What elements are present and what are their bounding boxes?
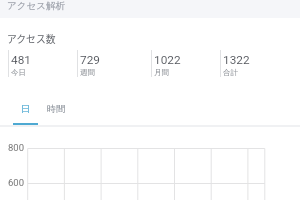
staticText: 1022 xyxy=(154,53,181,67)
staticText: 日 xyxy=(21,103,31,115)
staticText: 週間 xyxy=(80,68,95,77)
staticText: 800 xyxy=(8,142,25,153)
staticText: 合計 xyxy=(223,68,238,77)
staticText: 729 xyxy=(80,53,100,67)
button[interactable]: 729 xyxy=(77,50,151,78)
staticText: アクセス解析 xyxy=(7,0,65,12)
staticText: 今日 xyxy=(11,68,26,77)
staticText: 600 xyxy=(8,177,25,188)
staticText: 時間 xyxy=(47,103,66,115)
staticText: 1322 xyxy=(223,53,250,67)
staticText: 481 xyxy=(11,53,31,67)
button[interactable]: 時間 xyxy=(39,98,74,126)
staticText: 月間 xyxy=(154,68,169,77)
button[interactable]: 日 xyxy=(13,98,38,126)
button[interactable]: アクセス解析 xyxy=(0,0,300,18)
button[interactable]: 1322 xyxy=(220,50,289,78)
button[interactable]: 1022 xyxy=(151,50,220,78)
button[interactable]: 481 xyxy=(8,50,77,78)
staticText: アクセス数 xyxy=(7,32,56,46)
